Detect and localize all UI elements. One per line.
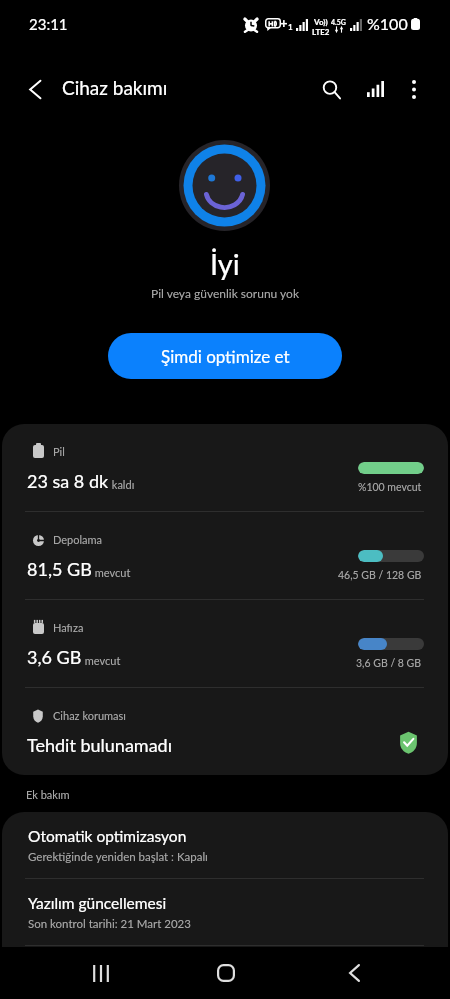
staticText: %100 (367, 14, 408, 33)
staticText: 3,6 GB / 8 GB (356, 657, 422, 670)
staticText: İyi (210, 246, 240, 281)
button[interactable]: Recents (77, 949, 125, 997)
staticText: Hafıza (53, 621, 84, 634)
staticText: Ek bakım (26, 788, 70, 801)
staticText: kaldı (109, 478, 135, 491)
staticText: Tehdit bulunamadı (27, 734, 172, 756)
staticText: 3,6 GB (27, 646, 82, 668)
staticText: Şimdi optimize et (161, 346, 290, 366)
button[interactable]: Şimdi optimize et (108, 333, 342, 379)
staticText: 23 sa 8 dk (27, 470, 109, 492)
button[interactable]: Search (308, 66, 354, 112)
staticText: 46,5 GB / 128 GB (338, 569, 422, 582)
staticText: 23:11 (29, 15, 68, 33)
staticText: Cihaz koruması (53, 709, 126, 722)
staticText: Otomatik optimizasyon (28, 827, 187, 846)
staticText: Uygulama güvenliği (28, 961, 161, 980)
staticText: Pil veya güvenlik sorunu yok (151, 286, 299, 300)
button[interactable]: Back (330, 949, 378, 997)
staticText: Pil (53, 445, 65, 458)
button[interactable]: Back (12, 66, 58, 112)
button[interactable]: Yazılım güncellemesi (2, 879, 448, 945)
staticText: Vo)) (314, 17, 328, 27)
button[interactable]: Depolama (2, 512, 448, 599)
staticText: 1 (288, 22, 293, 32)
staticText: Cihaz bakımı (62, 76, 168, 99)
staticText: 4.5G (331, 18, 346, 26)
staticText: Son kontrol tarihi: 21 Mart 2023 (28, 917, 191, 931)
button[interactable]: Hafıza (2, 600, 448, 687)
staticText: Gerektiğinde yeniden başlat : Kapalı (28, 850, 208, 864)
button[interactable]: Uygulama güvenliği (2, 946, 448, 999)
staticText: + (280, 15, 288, 31)
staticText: %100 mevcut (358, 481, 422, 494)
staticText: Yazılım güncellemesi (28, 894, 167, 913)
button[interactable]: Usage statistics (352, 66, 398, 112)
button[interactable]: Cihaz koruması (2, 688, 448, 775)
staticText: LTE2 (312, 27, 330, 37)
staticText: mevcut (82, 654, 121, 667)
staticText: Depolama (53, 533, 103, 546)
staticText: 81,5 GB (27, 558, 92, 580)
button[interactable]: More options (391, 66, 437, 112)
button[interactable]: Home (202, 949, 250, 997)
staticText: mevcut (92, 566, 131, 579)
button[interactable]: Otomatik optimizasyon (2, 812, 448, 878)
button[interactable]: Pil (2, 424, 448, 511)
